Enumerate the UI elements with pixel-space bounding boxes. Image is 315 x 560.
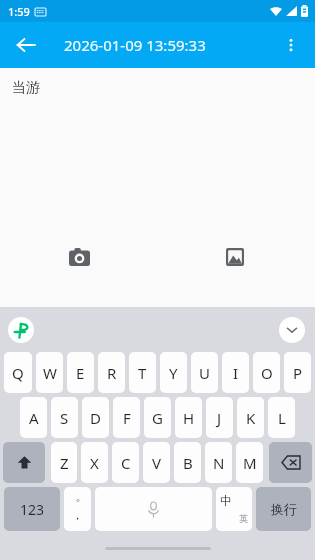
staticText: L xyxy=(278,408,286,428)
button[interactable]: V xyxy=(143,442,170,483)
button[interactable]: A xyxy=(20,397,47,438)
staticText: P xyxy=(293,363,303,383)
button[interactable]: Backspace xyxy=(269,442,312,483)
button[interactable]: Switch Chinese English xyxy=(216,487,252,531)
staticText: K xyxy=(246,408,256,428)
button[interactable]: Space, voice input xyxy=(95,487,212,531)
button[interactable]: 123 xyxy=(4,487,60,531)
staticText: G xyxy=(152,408,163,428)
button[interactable]: Q xyxy=(4,352,32,393)
staticText: U xyxy=(199,363,210,383)
button[interactable]: X xyxy=(81,442,108,483)
staticText: J xyxy=(217,408,222,428)
button[interactable]: Input method logo xyxy=(8,317,34,343)
staticText: 2026-01-09 13:59:33 xyxy=(64,35,206,55)
staticText: 1:59 xyxy=(8,4,30,19)
staticText: ° xyxy=(76,496,80,508)
staticText: Y xyxy=(169,363,178,383)
button[interactable]: I xyxy=(222,352,249,393)
button[interactable]: W xyxy=(36,352,63,393)
button[interactable]: O xyxy=(253,352,280,393)
staticText: Z xyxy=(60,453,69,473)
button[interactable]: T xyxy=(129,352,156,393)
button[interactable]: L xyxy=(268,397,295,438)
staticText: 当游 xyxy=(12,79,40,97)
staticText: V xyxy=(152,453,162,473)
button[interactable]: Take photo xyxy=(58,236,100,278)
button[interactable]: ° xyxy=(64,487,91,531)
button[interactable]: U xyxy=(191,352,218,393)
staticText: B xyxy=(183,453,193,473)
staticText: E xyxy=(76,363,85,383)
button[interactable]: F xyxy=(113,397,140,438)
button[interactable]: R xyxy=(98,352,125,393)
staticText: 123 xyxy=(20,500,45,519)
button[interactable]: E xyxy=(67,352,94,393)
button[interactable]: P xyxy=(284,352,311,393)
button[interactable]: B xyxy=(174,442,201,483)
staticText: D xyxy=(90,408,101,428)
staticText: 中 xyxy=(220,493,232,508)
button[interactable]: Choose image xyxy=(214,236,256,278)
button[interactable]: G xyxy=(144,397,171,438)
staticText: Q xyxy=(12,363,24,383)
button[interactable]: M xyxy=(236,442,263,483)
button[interactable]: Shift xyxy=(3,442,45,483)
staticText: 换行 xyxy=(271,501,297,517)
button[interactable]: J xyxy=(206,397,233,438)
staticText: R xyxy=(107,363,117,383)
staticText: S xyxy=(60,408,69,428)
button[interactable]: Hide keyboard xyxy=(279,317,305,343)
button[interactable]: K xyxy=(237,397,264,438)
staticText: A xyxy=(29,408,39,428)
button[interactable]: S xyxy=(51,397,78,438)
staticText: H xyxy=(183,408,195,428)
staticText: T xyxy=(138,363,147,383)
button[interactable]: Back xyxy=(6,25,46,65)
staticText: N xyxy=(213,453,225,473)
button[interactable]: More options xyxy=(271,25,311,65)
button[interactable]: N xyxy=(205,442,232,483)
staticText: 英 xyxy=(239,513,248,524)
staticText: ， xyxy=(72,508,83,522)
staticText: F xyxy=(123,408,131,428)
button[interactable]: D xyxy=(82,397,109,438)
button[interactable]: 换行 xyxy=(256,487,311,531)
button[interactable]: Y xyxy=(160,352,187,393)
staticText: W xyxy=(43,363,57,383)
button[interactable]: H xyxy=(175,397,202,438)
button[interactable]: Z xyxy=(51,442,77,483)
button[interactable]: C xyxy=(112,442,139,483)
staticText: X xyxy=(90,453,99,473)
staticText: C xyxy=(121,453,131,473)
staticText: I xyxy=(233,363,239,383)
staticText: M xyxy=(243,453,257,473)
staticText: O xyxy=(261,363,273,383)
